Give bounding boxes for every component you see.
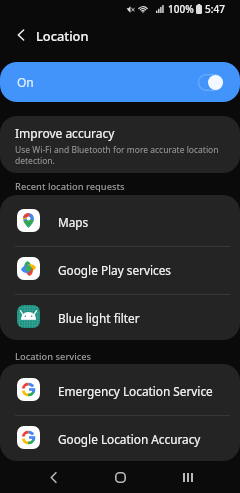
staticText: Location services [15, 350, 92, 363]
button[interactable]: Recents [173, 462, 203, 492]
staticText: Google Location Accuracy [58, 431, 201, 447]
button[interactable]: Home [105, 462, 135, 492]
staticText: Location [36, 27, 89, 44]
button[interactable]: On [0, 62, 240, 102]
staticText: Maps [58, 214, 89, 230]
staticText: 5:47 [205, 2, 225, 16]
button[interactable]: Back [38, 462, 68, 492]
staticText: Emergency Location Service [58, 383, 213, 399]
staticText: Improve accuracy [15, 125, 115, 141]
staticText: Blue light filter [58, 310, 140, 326]
staticText: Google Play services [58, 262, 171, 278]
staticText: On [17, 74, 34, 90]
staticText: Use Wi-Fi and Bluetooth for more accurat… [15, 144, 226, 166]
button[interactable]: Back [10, 24, 32, 46]
button[interactable]: Blue light filter [0, 295, 240, 340]
button[interactable]: Maps [0, 199, 240, 246]
staticText: Recent location requests [15, 180, 125, 193]
button[interactable]: Google Play services [0, 247, 240, 294]
button[interactable]: Emergency Location Service [0, 368, 240, 415]
button[interactable]: Improve accuracy [0, 116, 240, 173]
button[interactable]: Google Location Accuracy [0, 416, 240, 461]
staticText: 100% [168, 2, 194, 16]
